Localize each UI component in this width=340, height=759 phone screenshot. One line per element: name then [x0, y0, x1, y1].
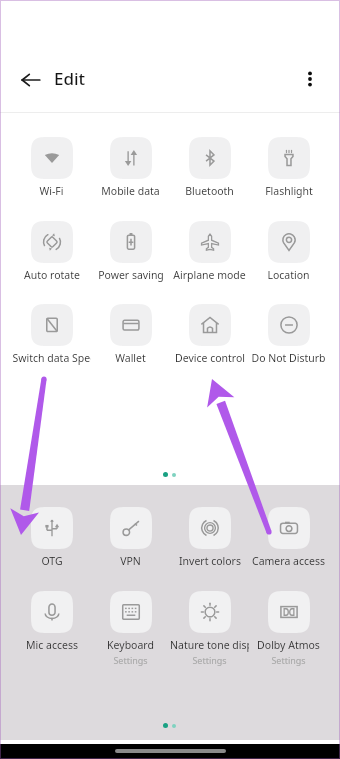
button[interactable]: Do Not Disturb	[249, 304, 328, 365]
staticText: VPN	[120, 554, 141, 568]
button[interactable]: OTG	[12, 507, 91, 568]
staticText: Power saving	[98, 268, 164, 282]
staticText: Settings	[192, 654, 227, 666]
button[interactable]: Back	[11, 60, 51, 100]
button[interactable]: Wi-Fi	[12, 137, 91, 198]
staticText: Wallet	[115, 351, 146, 365]
button[interactable]: Mic access	[12, 591, 91, 652]
button[interactable]: Wallet	[91, 304, 170, 365]
button[interactable]: Airplane mode	[170, 221, 249, 282]
staticText: Camera access	[252, 554, 325, 568]
staticText: OTG	[41, 554, 63, 568]
button[interactable]: Switch data Speed	[12, 304, 91, 365]
staticText: Switch data Speed	[12, 351, 91, 365]
staticText: Invert colors	[179, 554, 241, 568]
button[interactable]: Keyboard	[91, 591, 170, 666]
staticText: Bluetooth	[185, 184, 234, 198]
staticText: Mobile data	[101, 184, 160, 198]
staticText: Mic access	[26, 638, 78, 652]
staticText: Settings	[113, 654, 148, 666]
staticText: Do Not Disturb	[251, 351, 326, 365]
staticText: Wi-Fi	[39, 184, 64, 198]
button[interactable]: Bluetooth	[170, 137, 249, 198]
button[interactable]: Dolby Atmos	[249, 591, 328, 666]
button[interactable]: Invert colors	[170, 507, 249, 568]
staticText: Auto rotate	[24, 268, 80, 282]
button[interactable]: Device control	[170, 304, 249, 365]
button[interactable]: Nature tone display	[170, 591, 249, 666]
staticText: Flashlight	[265, 184, 313, 198]
button[interactable]: Mobile data	[91, 137, 170, 198]
button[interactable]: Flashlight	[249, 137, 328, 198]
staticText: Nature tone display	[170, 638, 249, 652]
staticText: Edit	[54, 67, 86, 90]
button[interactable]: VPN	[91, 507, 170, 568]
staticText: Keyboard	[107, 638, 154, 652]
button[interactable]: Power saving	[91, 221, 170, 282]
button[interactable]: More options	[290, 59, 330, 99]
button[interactable]: Camera access	[249, 507, 328, 568]
staticText: Device control	[175, 351, 245, 365]
staticText: Location	[267, 268, 310, 282]
staticText: Dolby Atmos	[257, 638, 320, 652]
button[interactable]: Auto rotate	[12, 221, 91, 282]
button[interactable]: Location	[249, 221, 328, 282]
staticText: Settings	[271, 654, 306, 666]
staticText: Airplane mode	[173, 268, 246, 282]
